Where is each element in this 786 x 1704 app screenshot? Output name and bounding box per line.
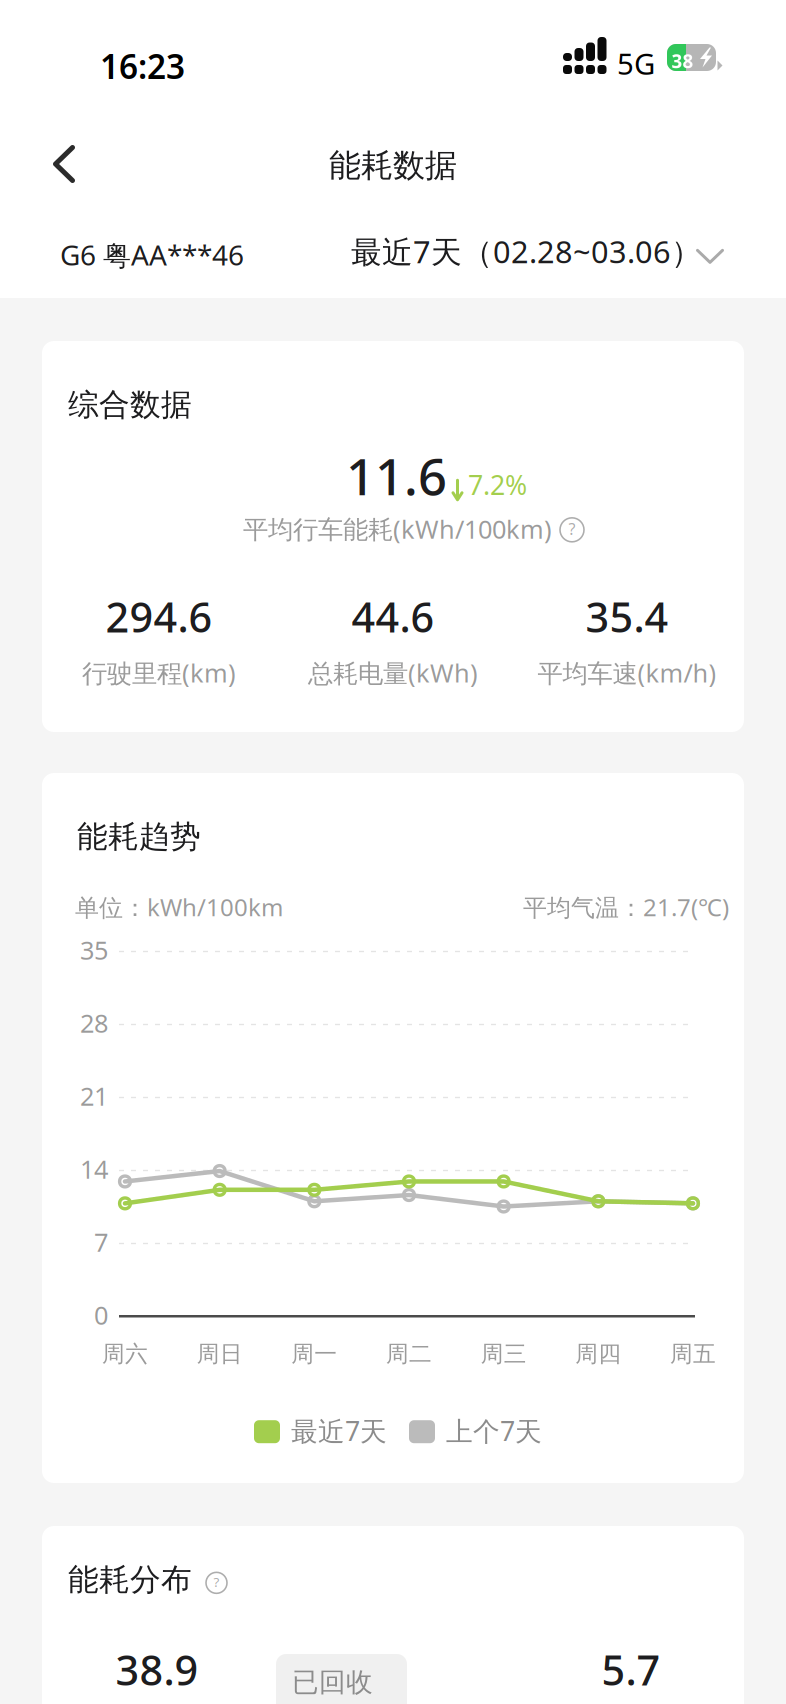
staticText: 周五 [670,1340,716,1368]
button[interactable]: G6 粤AA***46 [60,236,244,273]
staticText: 最近7天 [291,1413,387,1448]
staticText: 28 [80,1006,108,1040]
staticText: 平均气温：21.7(℃) [523,891,729,923]
staticText: 已回收 [292,1666,373,1699]
staticText: G6 粤AA***46 [60,236,244,273]
staticText: ? [213,1573,219,1591]
staticText: 5G [617,44,655,83]
staticText: 7 [94,1225,108,1259]
staticText: 38.9 [115,1642,198,1697]
staticText: 294.6 [105,589,212,644]
staticText: 上个7天 [446,1413,542,1448]
button[interactable]: 最近7天（02.28~03.06） [351,231,745,272]
staticText: 周六 [102,1340,148,1368]
staticText: 综合数据 [68,386,192,424]
staticText: 16:23 [100,44,185,88]
staticText: 7.2% [468,467,527,502]
staticText: 平均车速(km/h) [537,656,716,689]
staticText: 14 [80,1152,108,1186]
staticText: 周四 [575,1340,621,1368]
staticText: 能耗数据 [329,146,457,185]
staticText: 5.7 [601,1642,660,1697]
staticText: 35.4 [585,589,668,644]
staticText: 周三 [481,1340,527,1368]
staticText: 总耗电量(kWh) [308,656,478,689]
staticText: 11.6 [346,442,447,509]
button[interactable]: Back [42,138,86,190]
staticText: 能耗趋势 [77,818,201,856]
staticText: 最近7天（02.28~03.06） [351,231,702,272]
staticText: 44.6 [351,589,434,644]
staticText: 能耗分布 [68,1561,192,1599]
staticText: 38 [671,48,693,73]
staticText: ? [568,518,575,539]
staticText: 周日 [197,1340,243,1368]
staticText: 单位：kWh/100km [75,891,283,923]
staticText: 行驶里程(km) [82,656,236,689]
staticText: 35 [80,933,108,967]
staticText: 周一 [291,1340,337,1368]
staticText: 0 [94,1298,108,1332]
staticText: 21 [80,1079,108,1113]
staticText: 平均行车能耗(kWh/100km) [243,512,552,546]
staticText: 周二 [386,1340,432,1368]
